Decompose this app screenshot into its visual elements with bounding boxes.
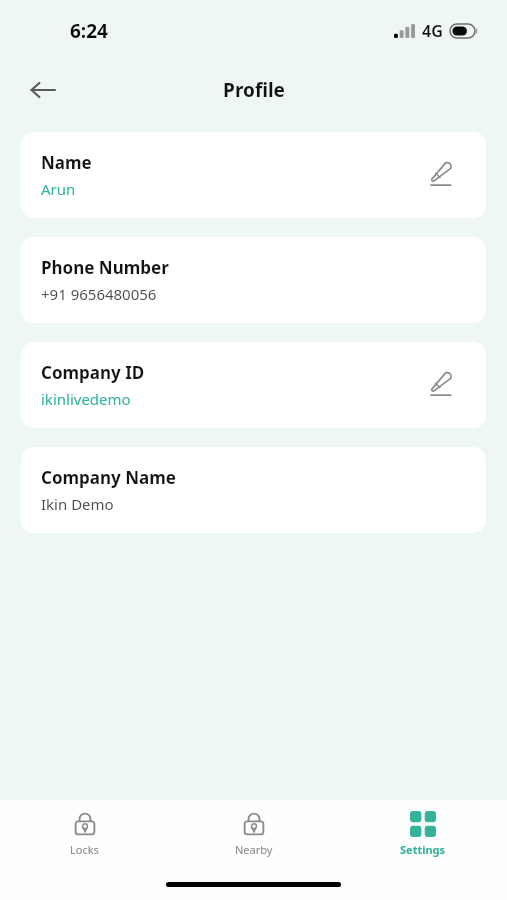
staticText: Nearby (235, 842, 273, 857)
button[interactable]: Locks (0, 811, 169, 857)
staticText: 6:24 (70, 18, 108, 44)
staticText: +91 9656480056 (41, 284, 157, 304)
button[interactable]: Company Name (21, 447, 486, 533)
button[interactable]: Phone Number (21, 237, 486, 323)
staticText: Name (41, 151, 92, 174)
staticText: Arun (41, 179, 76, 199)
button[interactable]: Settings (338, 811, 507, 857)
staticText: Settings (400, 842, 446, 857)
staticText: 4G (422, 20, 443, 42)
staticText: Company Name (41, 466, 176, 489)
staticText: Company ID (41, 361, 145, 384)
button[interactable]: Nearby (169, 811, 338, 857)
staticText: ikinlivedemo (41, 389, 131, 409)
staticText: Ikin Demo (41, 494, 114, 514)
staticText: Phone Number (41, 256, 169, 279)
button[interactable]: Edit Company ID (422, 366, 460, 404)
staticText: Locks (70, 842, 99, 857)
button[interactable]: Company ID (21, 342, 486, 428)
button[interactable]: Back (20, 67, 66, 113)
button[interactable]: Name (21, 132, 486, 218)
staticText: Profile (223, 77, 285, 103)
button[interactable]: Edit Name (422, 156, 460, 194)
